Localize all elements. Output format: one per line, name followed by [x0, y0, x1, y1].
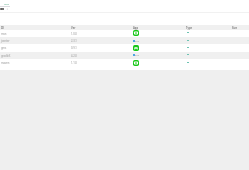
button[interactable]	[0, 52, 249, 59]
button[interactable]	[0, 59, 249, 66]
button[interactable]	[0, 37, 249, 44]
staticText: jcenter	[1, 39, 10, 43]
staticText: link	[135, 39, 139, 42]
staticText: 4.2.0	[71, 54, 77, 58]
button[interactable]: Open app	[133, 30, 139, 36]
staticText: 1.1.0	[71, 61, 77, 65]
button[interactable]	[0, 44, 249, 51]
staticText: gradleX	[1, 54, 11, 58]
staticText: Ver	[71, 26, 76, 30]
button[interactable]: Open app	[133, 45, 139, 51]
staticText: ID	[1, 26, 4, 30]
button[interactable]: Browser tab	[0, 7, 11, 11]
staticText: gms	[1, 46, 7, 50]
staticText: link	[135, 53, 139, 56]
staticText: 1.0.0	[71, 32, 77, 36]
staticText: App	[133, 26, 139, 30]
staticText: Size	[232, 26, 238, 30]
staticText: 2.3.1	[71, 39, 77, 43]
button[interactable]: Open app	[133, 60, 139, 66]
staticText: 0.9.1	[71, 46, 77, 50]
staticText: mvn	[1, 32, 7, 36]
staticText: maven	[1, 61, 10, 65]
staticText: Type	[186, 26, 193, 30]
staticText: docs	[4, 2, 10, 5]
button[interactable]	[0, 30, 249, 37]
